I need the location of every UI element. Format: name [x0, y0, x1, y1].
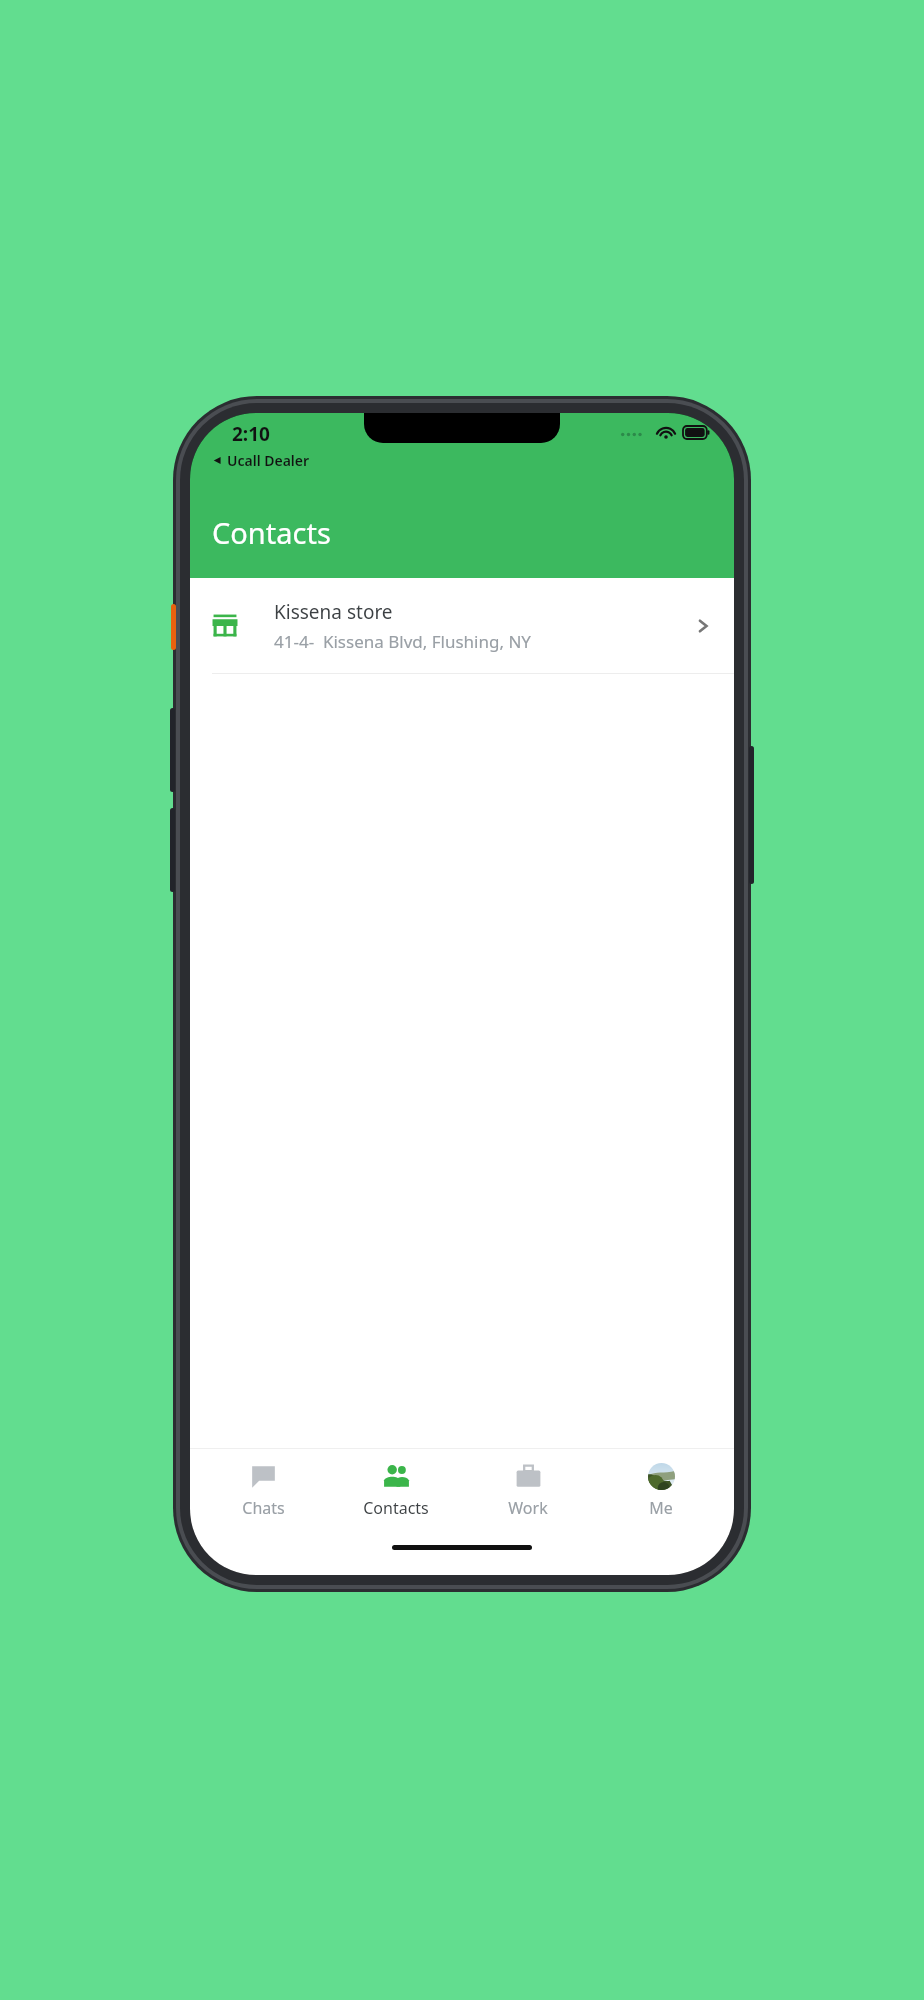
staticText: Contacts — [212, 513, 331, 552]
staticText: 41-4- Kissena Blvd, Flushing, NY — [274, 630, 531, 653]
other: Me — [648, 1463, 675, 1490]
staticText: Contacts — [363, 1497, 429, 1519]
staticText: Me — [649, 1497, 673, 1519]
button[interactable]: Ucall Dealer — [212, 451, 310, 470]
other: Open contact — [692, 615, 714, 637]
button[interactable]: Me — [601, 1459, 721, 1523]
staticText: Chats — [242, 1497, 285, 1519]
other: Chats — [250, 1463, 277, 1490]
other: Store — [212, 613, 238, 639]
button[interactable]: Contacts — [336, 1459, 456, 1523]
staticText: Work — [508, 1497, 548, 1519]
button[interactable]: Chats — [203, 1459, 323, 1523]
staticText: Kissena store — [274, 599, 393, 625]
button[interactable]: Work — [468, 1459, 588, 1523]
button[interactable]: Store — [190, 578, 734, 673]
other: Work — [515, 1463, 542, 1490]
staticText: Ucall Dealer — [227, 451, 310, 470]
other: Contacts — [383, 1463, 410, 1490]
staticText: 2:10 — [232, 421, 270, 447]
